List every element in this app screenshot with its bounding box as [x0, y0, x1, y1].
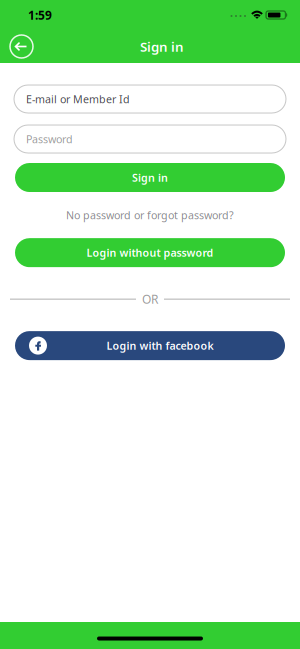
- button[interactable]: Login with facebook: [15, 331, 285, 360]
- button[interactable]: Login without password: [15, 238, 285, 267]
- staticText: Login without password: [86, 246, 213, 260]
- staticText: Sign in: [140, 38, 184, 55]
- staticText: Password: [26, 132, 73, 146]
- button[interactable]: Sign in: [15, 163, 285, 192]
- button[interactable]: Back: [10, 35, 33, 58]
- staticText: Sign in: [132, 170, 168, 185]
- staticText: 1:59: [28, 7, 52, 23]
- staticText: Login with facebook: [106, 338, 213, 353]
- staticText: OR: [142, 291, 158, 307]
- staticText: E-mail or Member Id: [26, 92, 130, 106]
- staticText: No password or forgot password?: [66, 208, 234, 222]
